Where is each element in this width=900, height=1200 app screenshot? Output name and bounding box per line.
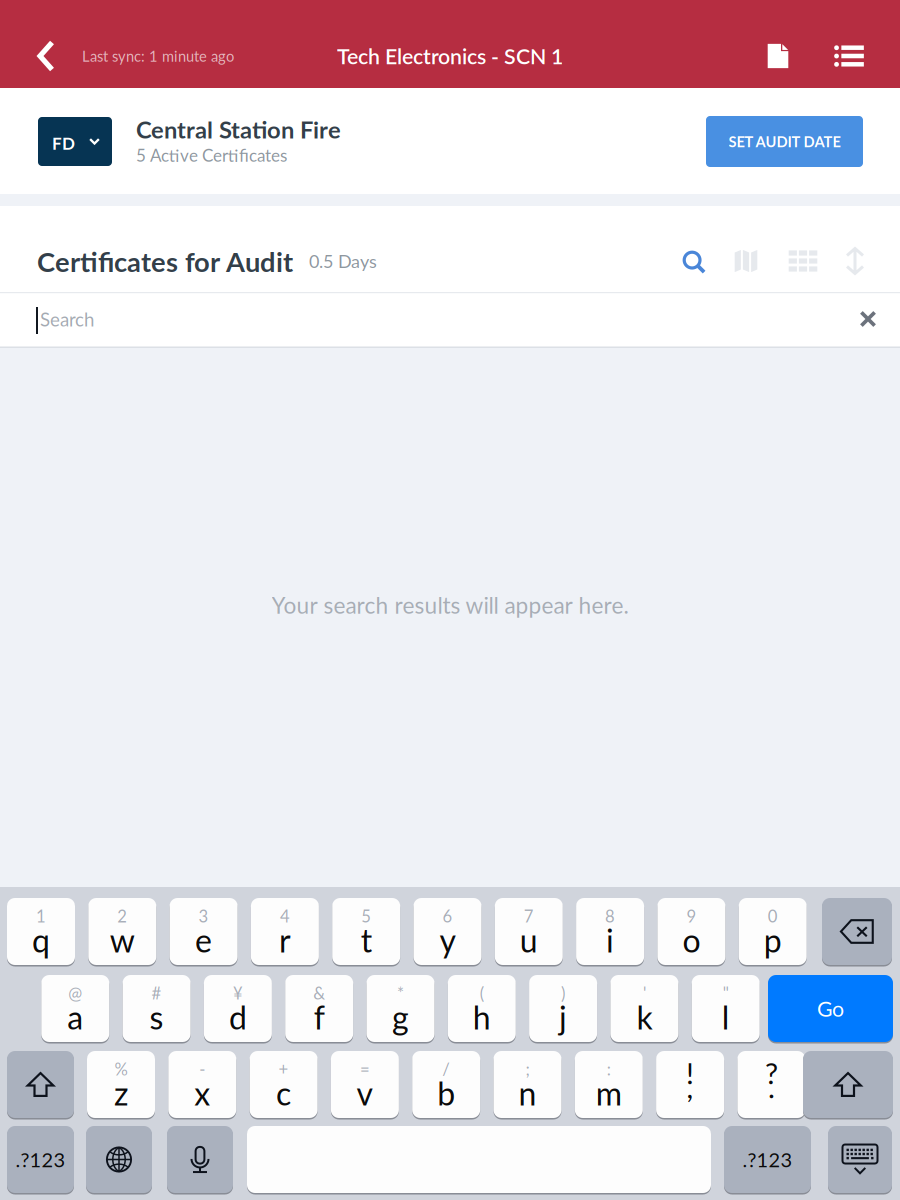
button[interactable]: #: [123, 975, 191, 1043]
button[interactable]: ?: [737, 1051, 805, 1119]
staticText: Certificates for Audit: [37, 245, 293, 278]
staticText: 8: [605, 906, 615, 926]
button[interactable]: ¥: [204, 975, 272, 1043]
button[interactable]: 6: [413, 898, 481, 966]
staticText: :: [607, 1059, 611, 1079]
button[interactable]: FD: [38, 117, 112, 166]
staticText: b: [437, 1074, 455, 1112]
button[interactable]: !: [656, 1051, 724, 1119]
button[interactable]: ;: [493, 1051, 561, 1119]
button[interactable]: ": [692, 975, 760, 1043]
button[interactable]: ): [529, 975, 597, 1043]
staticText: l: [722, 998, 730, 1036]
button[interactable]: Document: [743, 24, 813, 88]
button[interactable]: Grid view: [776, 234, 830, 288]
staticText: q: [32, 921, 50, 959]
button[interactable]: Shift: [803, 1051, 893, 1119]
staticText: Your search results will appear here.: [271, 591, 628, 619]
staticText: g: [392, 998, 409, 1036]
button[interactable]: Go: [768, 975, 893, 1043]
staticText: /: [442, 1059, 450, 1079]
button[interactable]: Back: [18, 24, 74, 88]
staticText: *: [397, 983, 404, 1003]
staticText: ': [643, 983, 646, 1003]
staticText: Central Station Fire: [136, 115, 341, 143]
staticText: #: [152, 983, 162, 1003]
staticText: 0.5 Days: [309, 250, 377, 272]
button[interactable]: .?123: [7, 1126, 74, 1194]
staticText: 3: [199, 906, 209, 926]
button[interactable]: 2: [88, 898, 156, 966]
button[interactable]: Dictation: [167, 1126, 233, 1194]
button[interactable]: Hide keyboard: [828, 1126, 892, 1194]
button[interactable]: @: [41, 975, 109, 1043]
staticText: -: [199, 1059, 205, 1079]
staticText: @: [68, 983, 82, 1003]
button[interactable]: 3: [170, 898, 238, 966]
button[interactable]: /: [412, 1051, 480, 1119]
button[interactable]: 5: [332, 898, 400, 966]
staticText: +: [279, 1059, 289, 1079]
staticText: r: [279, 921, 291, 959]
staticText: o: [682, 921, 700, 959]
button[interactable]: :: [575, 1051, 643, 1119]
button[interactable]: ': [610, 975, 678, 1043]
staticText: a: [67, 998, 83, 1036]
staticText: z: [114, 1074, 128, 1112]
button[interactable]: 4: [251, 898, 319, 966]
staticText: 7: [524, 906, 534, 926]
button[interactable]: -: [168, 1051, 236, 1119]
staticText: .?123: [15, 1147, 65, 1171]
staticText: i: [606, 921, 614, 959]
button[interactable]: Space: [247, 1126, 711, 1194]
button[interactable]: 8: [576, 898, 644, 966]
staticText: Go: [817, 996, 844, 1021]
staticText: ;: [525, 1059, 529, 1079]
staticText: %: [114, 1059, 127, 1079]
staticText: Last sync: 1 minute ago: [82, 47, 234, 65]
staticText: 2: [117, 906, 127, 926]
staticText: 9: [686, 906, 696, 926]
staticText: 5: [361, 906, 371, 926]
staticText: .: [768, 1069, 775, 1105]
staticText: FD: [52, 133, 75, 153]
staticText: s: [150, 998, 164, 1036]
button[interactable]: *: [366, 975, 434, 1043]
button[interactable]: +: [250, 1051, 318, 1119]
button[interactable]: .?123: [724, 1126, 811, 1194]
button[interactable]: Delete: [822, 898, 892, 966]
button[interactable]: SET AUDIT DATE: [706, 116, 863, 167]
button[interactable]: &: [285, 975, 353, 1043]
staticText: t: [361, 921, 372, 959]
button[interactable]: Map view: [719, 234, 773, 288]
staticText: 0: [768, 906, 778, 926]
button[interactable]: Next keyboard: [86, 1126, 152, 1194]
staticText: y: [439, 921, 455, 959]
button[interactable]: 9: [657, 898, 725, 966]
button[interactable]: %: [87, 1051, 155, 1119]
staticText: j: [559, 998, 567, 1036]
staticText: x: [194, 1074, 210, 1112]
staticText: ": [723, 983, 729, 1003]
staticText: .?123: [742, 1147, 792, 1171]
staticText: ): [561, 983, 565, 1003]
button[interactable]: Shift: [7, 1051, 74, 1119]
button[interactable]: Clear search: [840, 291, 896, 347]
staticText: Search: [40, 308, 94, 330]
staticText: h: [473, 998, 491, 1036]
button[interactable]: Search: [667, 235, 721, 289]
staticText: v: [356, 1074, 373, 1112]
staticText: p: [764, 921, 782, 959]
staticText: k: [636, 998, 652, 1036]
button[interactable]: (: [448, 975, 516, 1043]
button[interactable]: 1: [7, 898, 75, 966]
button[interactable]: =: [331, 1051, 399, 1119]
button[interactable]: 7: [495, 898, 563, 966]
staticText: m: [596, 1074, 622, 1112]
staticText: &: [313, 983, 325, 1003]
button[interactable]: Menu: [812, 24, 886, 88]
staticText: 1: [36, 906, 46, 926]
button[interactable]: Sort: [828, 234, 882, 288]
staticText: c: [276, 1074, 291, 1112]
button[interactable]: 0: [739, 898, 807, 966]
